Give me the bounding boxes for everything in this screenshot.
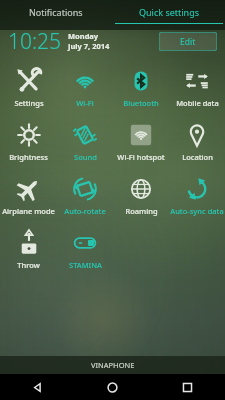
staticText: 10:25 xyxy=(8,27,62,56)
button[interactable]: Quick settings xyxy=(112,0,225,24)
staticText: Settings xyxy=(14,98,44,108)
button[interactable]: Auto-rotate xyxy=(57,170,113,216)
button[interactable]: Wi-Fi xyxy=(57,62,113,108)
button[interactable]: Location xyxy=(169,116,225,162)
staticText: Brightness xyxy=(9,152,48,162)
button[interactable]: Wi-Fi hotspot xyxy=(113,116,169,162)
staticText: Throw xyxy=(17,260,40,270)
button[interactable]: Auto-sync data xyxy=(169,170,225,216)
staticText: Roaming xyxy=(125,206,158,216)
button[interactable]: STAMINA xyxy=(57,224,113,270)
staticText: Wi-Fi hotspot xyxy=(117,152,165,162)
button[interactable]: Edit xyxy=(159,32,217,51)
button[interactable]: Recent apps xyxy=(150,374,225,400)
staticText: Airplane mode xyxy=(2,206,55,216)
button[interactable]: Bluetooth xyxy=(113,62,169,108)
staticText: Auto-sync data xyxy=(170,206,224,216)
button[interactable]: Settings xyxy=(0,62,57,108)
staticText: Mobile data xyxy=(176,98,219,108)
staticText: Sound xyxy=(74,152,97,162)
button[interactable]: Throw xyxy=(0,224,57,270)
staticText: Quick settings xyxy=(139,6,199,18)
staticText: Notifications xyxy=(29,6,83,18)
button[interactable]: Back xyxy=(0,374,75,400)
staticText: Monday xyxy=(68,31,99,41)
staticText: Location xyxy=(182,152,213,162)
staticText: July 7, 2014 xyxy=(68,41,110,51)
button[interactable]: Sound xyxy=(57,116,113,162)
button[interactable]: Notifications xyxy=(0,0,112,24)
button[interactable]: Roaming xyxy=(113,170,169,216)
button[interactable]: Brightness xyxy=(0,116,57,162)
staticText: Bluetooth xyxy=(123,98,159,108)
staticText: STAMINA xyxy=(69,260,102,270)
button[interactable]: Home xyxy=(75,374,150,400)
staticText: Auto-rotate xyxy=(64,206,106,216)
staticText: VINAPHONE xyxy=(91,360,135,370)
button[interactable]: Mobile data xyxy=(169,62,225,108)
staticText: Wi-Fi xyxy=(76,98,94,108)
button[interactable]: Airplane mode xyxy=(0,170,57,216)
staticText: Edit xyxy=(180,36,196,48)
